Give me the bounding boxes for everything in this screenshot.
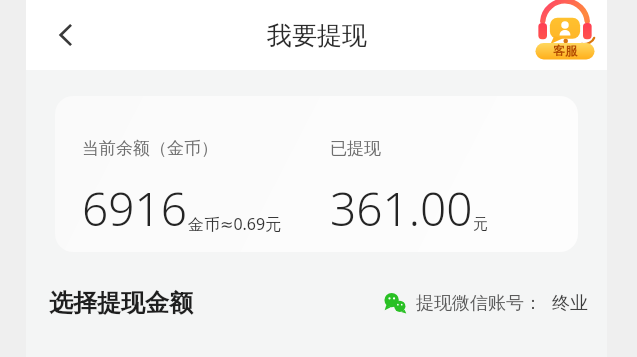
staticText: 元 — [473, 215, 488, 234]
staticText: 已提现 — [330, 138, 381, 159]
staticText: 提现微信账号： — [416, 292, 542, 315]
staticText: 361.00 — [330, 177, 473, 240]
staticText: 当前余额（金币） — [82, 138, 218, 159]
staticText: 我要提现 — [267, 20, 367, 51]
staticText: 客服 — [553, 43, 577, 58]
button[interactable]: 提现微信账号： — [383, 291, 588, 315]
staticText: 6916 — [82, 177, 188, 240]
staticText: 终业 — [552, 292, 588, 315]
staticText: 金币≈0.69元 — [188, 213, 282, 235]
button[interactable]: Back — [42, 11, 90, 59]
button[interactable]: 当前余额（金币） — [55, 96, 578, 252]
staticText: 选择提现金额 — [49, 288, 193, 318]
button[interactable]: 客服 — [529, 0, 601, 70]
